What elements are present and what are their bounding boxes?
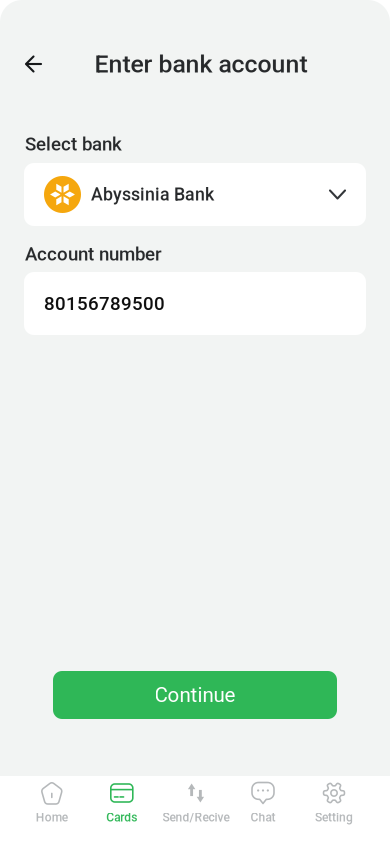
staticText: Setting: [315, 810, 353, 825]
staticText: Abyssinia Bank: [91, 184, 214, 205]
staticText: Account number: [25, 243, 162, 265]
staticText: Select bank: [25, 133, 122, 155]
button[interactable]: Setting: [315, 776, 353, 844]
button[interactable]: Back: [0, 44, 55, 83]
button[interactable]: Send/Recive: [162, 776, 229, 844]
button[interactable]: Chat: [250, 776, 275, 844]
button[interactable]: Abyssinia Bank: [0, 163, 390, 226]
button[interactable]: Cards: [106, 776, 137, 844]
button[interactable]: Continue: [0, 671, 390, 719]
staticText: Enter bank account: [94, 49, 307, 79]
staticText: Cards: [106, 810, 137, 825]
staticText: Home: [36, 810, 68, 825]
button[interactable]: Home: [36, 776, 68, 844]
button[interactable]: 80156789500: [0, 272, 390, 335]
staticText: Continue: [154, 683, 235, 707]
staticText: Chat: [250, 810, 275, 825]
staticText: 80156789500: [44, 293, 165, 314]
staticText: Send/Recive: [162, 810, 229, 825]
